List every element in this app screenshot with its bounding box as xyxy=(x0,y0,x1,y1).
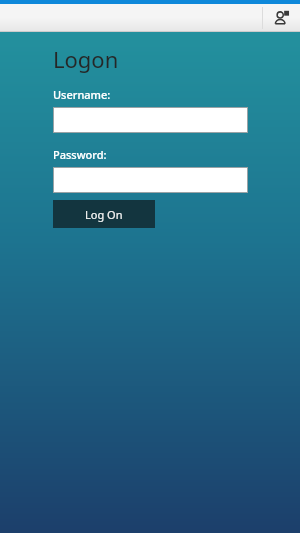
staticText: Log On xyxy=(85,207,123,222)
button[interactable]: Log On xyxy=(53,200,155,228)
staticText: Password: xyxy=(53,147,107,162)
staticText: Username: xyxy=(53,87,111,102)
button[interactable]: Account xyxy=(263,4,300,32)
staticText: Logon xyxy=(53,44,119,74)
